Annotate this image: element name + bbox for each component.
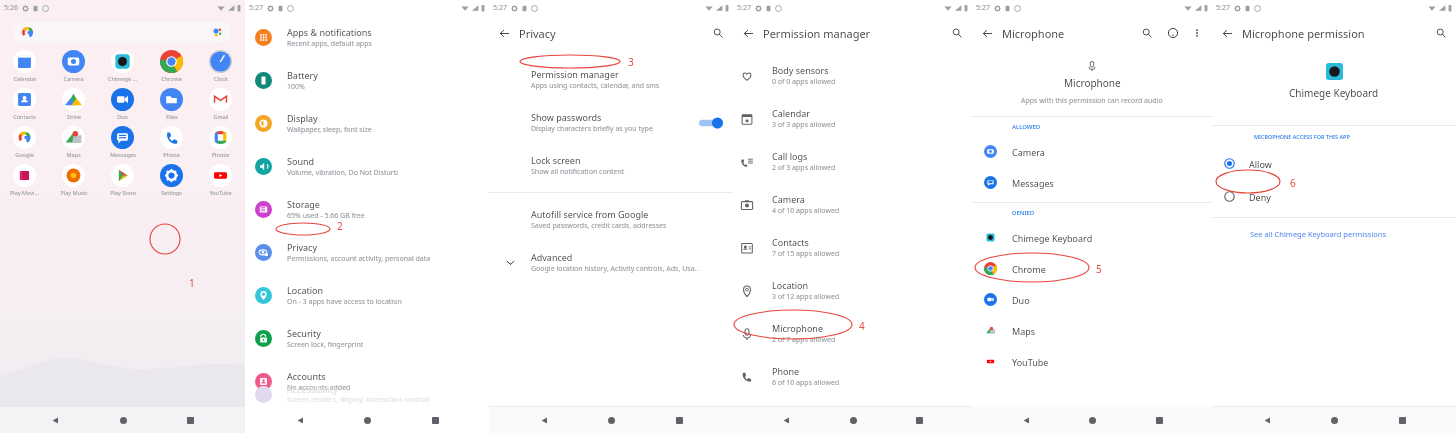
button[interactable]: Home bbox=[1321, 407, 1347, 433]
button[interactable]: Duo bbox=[972, 284, 1212, 315]
button[interactable]: Location bbox=[733, 269, 972, 312]
button[interactable]: Search bbox=[942, 16, 972, 50]
button[interactable]: Messages bbox=[98, 125, 147, 163]
button[interactable]: Drive bbox=[49, 87, 98, 125]
button[interactable]: Show passwords bbox=[489, 101, 733, 144]
button[interactable]: Call logs bbox=[733, 140, 972, 183]
button[interactable]: Accounts bbox=[245, 360, 489, 403]
button[interactable]: Back bbox=[287, 407, 313, 433]
button[interactable]: Battery bbox=[245, 59, 489, 102]
button[interactable]: Phone bbox=[733, 355, 972, 398]
staticText: Contacts bbox=[772, 236, 809, 248]
button[interactable]: Play Store bbox=[98, 163, 147, 201]
button[interactable]: Search bbox=[703, 16, 733, 50]
staticText: Files bbox=[166, 113, 178, 120]
button[interactable]: Home bbox=[110, 407, 136, 433]
button[interactable]: Camera bbox=[733, 183, 972, 226]
button[interactable]: Back bbox=[1254, 407, 1280, 433]
button[interactable]: More options bbox=[1186, 22, 1208, 44]
staticText: Privacy bbox=[519, 26, 556, 41]
button[interactable]: Chrome bbox=[147, 49, 196, 87]
staticText: Deny bbox=[1249, 191, 1271, 203]
staticText: Contacts bbox=[13, 113, 36, 120]
button[interactable]: Calendar bbox=[0, 49, 49, 87]
button[interactable]: Back bbox=[531, 407, 557, 433]
button[interactable]: Storage bbox=[245, 188, 489, 231]
button[interactable]: Deny bbox=[1212, 180, 1456, 213]
button[interactable]: Recents bbox=[906, 407, 932, 433]
button[interactable]: Recents bbox=[666, 407, 692, 433]
button[interactable]: Home bbox=[598, 407, 624, 433]
button[interactable]: YouTube bbox=[196, 163, 245, 201]
button[interactable]: Microphone bbox=[733, 312, 972, 355]
button[interactable]: Messages bbox=[972, 167, 1212, 198]
button[interactable]: Back bbox=[1212, 16, 1242, 50]
button[interactable] bbox=[14, 22, 231, 43]
button[interactable]: Photos bbox=[196, 125, 245, 163]
button[interactable]: Help bbox=[1160, 20, 1186, 46]
button[interactable]: Advanced bbox=[489, 241, 733, 284]
button[interactable]: Maps bbox=[972, 315, 1212, 346]
button[interactable]: Recents bbox=[177, 407, 203, 433]
button[interactable]: Search bbox=[1134, 20, 1160, 46]
button[interactable]: Back bbox=[972, 16, 1002, 50]
button[interactable]: Files bbox=[147, 87, 196, 125]
button[interactable]: Apps & notifications bbox=[245, 16, 489, 59]
button[interactable]: Back bbox=[1013, 407, 1039, 433]
button[interactable]: Duo bbox=[98, 87, 147, 125]
button[interactable]: Camera bbox=[49, 49, 98, 87]
button[interactable]: Calendar bbox=[733, 97, 972, 140]
button[interactable]: Display bbox=[245, 102, 489, 145]
button[interactable]: Back bbox=[42, 407, 68, 433]
staticText: Show all notification content bbox=[531, 167, 625, 177]
staticText: Advanced bbox=[531, 251, 573, 263]
staticText: Chimege Keyboard bbox=[1289, 86, 1379, 100]
button[interactable]: Chrome bbox=[972, 253, 1212, 284]
button[interactable]: Phone bbox=[147, 125, 196, 163]
button[interactable]: Back bbox=[773, 407, 799, 433]
button[interactable]: Gmail bbox=[196, 87, 245, 125]
button[interactable]: Search bbox=[1426, 16, 1456, 50]
button[interactable]: Location bbox=[245, 274, 489, 317]
button[interactable]: Recents bbox=[1146, 407, 1172, 433]
button[interactable]: Permission manager bbox=[489, 58, 733, 101]
button[interactable]: Security bbox=[245, 317, 489, 360]
button[interactable]: Home bbox=[840, 407, 866, 433]
button[interactable]: Play Movi... bbox=[0, 163, 49, 201]
button[interactable]: Clock bbox=[196, 49, 245, 87]
button[interactable]: Recents bbox=[422, 407, 448, 433]
button[interactable]: Back bbox=[489, 16, 519, 50]
button[interactable]: Home bbox=[1079, 407, 1105, 433]
button[interactable]: Maps bbox=[49, 125, 98, 163]
button[interactable]: Back bbox=[733, 16, 763, 50]
staticText: Microphone permission bbox=[1242, 26, 1365, 41]
staticText: Wallpaper, sleep, font size bbox=[287, 125, 372, 135]
staticText: Phone bbox=[772, 365, 800, 377]
button[interactable]: Home bbox=[354, 407, 380, 433]
button[interactable]: Contacts bbox=[0, 87, 49, 125]
button[interactable]: Settings bbox=[147, 163, 196, 201]
button[interactable]: Recents bbox=[1389, 407, 1415, 433]
staticText: Lock screen bbox=[531, 154, 581, 166]
staticText: Play Movi... bbox=[10, 189, 39, 196]
staticText: Play Store bbox=[110, 189, 136, 196]
button[interactable]: Body sensors bbox=[733, 54, 972, 97]
button[interactable]: Play Music bbox=[49, 163, 98, 201]
staticText: MICROPHONE ACCESS FOR THIS APP bbox=[1254, 133, 1350, 140]
staticText: 3 bbox=[628, 55, 634, 69]
staticText: Recent apps, default apps bbox=[287, 39, 372, 49]
button[interactable]: YouTube bbox=[972, 346, 1212, 377]
button[interactable]: Google bbox=[0, 125, 49, 163]
button[interactable]: See all Chimege Keyboard permissions bbox=[1250, 229, 1456, 239]
button[interactable]: Lock screen bbox=[489, 144, 733, 187]
button[interactable]: Contacts bbox=[733, 226, 972, 269]
button[interactable]: Allow bbox=[1212, 147, 1456, 180]
button[interactable]: Sound bbox=[245, 145, 489, 188]
button[interactable]: Autofill service from Google bbox=[489, 198, 733, 241]
staticText: Microphone bbox=[1064, 76, 1121, 90]
button[interactable]: Chimege ... bbox=[98, 49, 147, 87]
button[interactable]: Camera bbox=[972, 136, 1212, 167]
button[interactable]: Chimege Keyboard bbox=[972, 222, 1212, 253]
button[interactable]: Privacy bbox=[245, 231, 489, 274]
staticText: 65% used - 5.66 GB free bbox=[287, 211, 365, 221]
